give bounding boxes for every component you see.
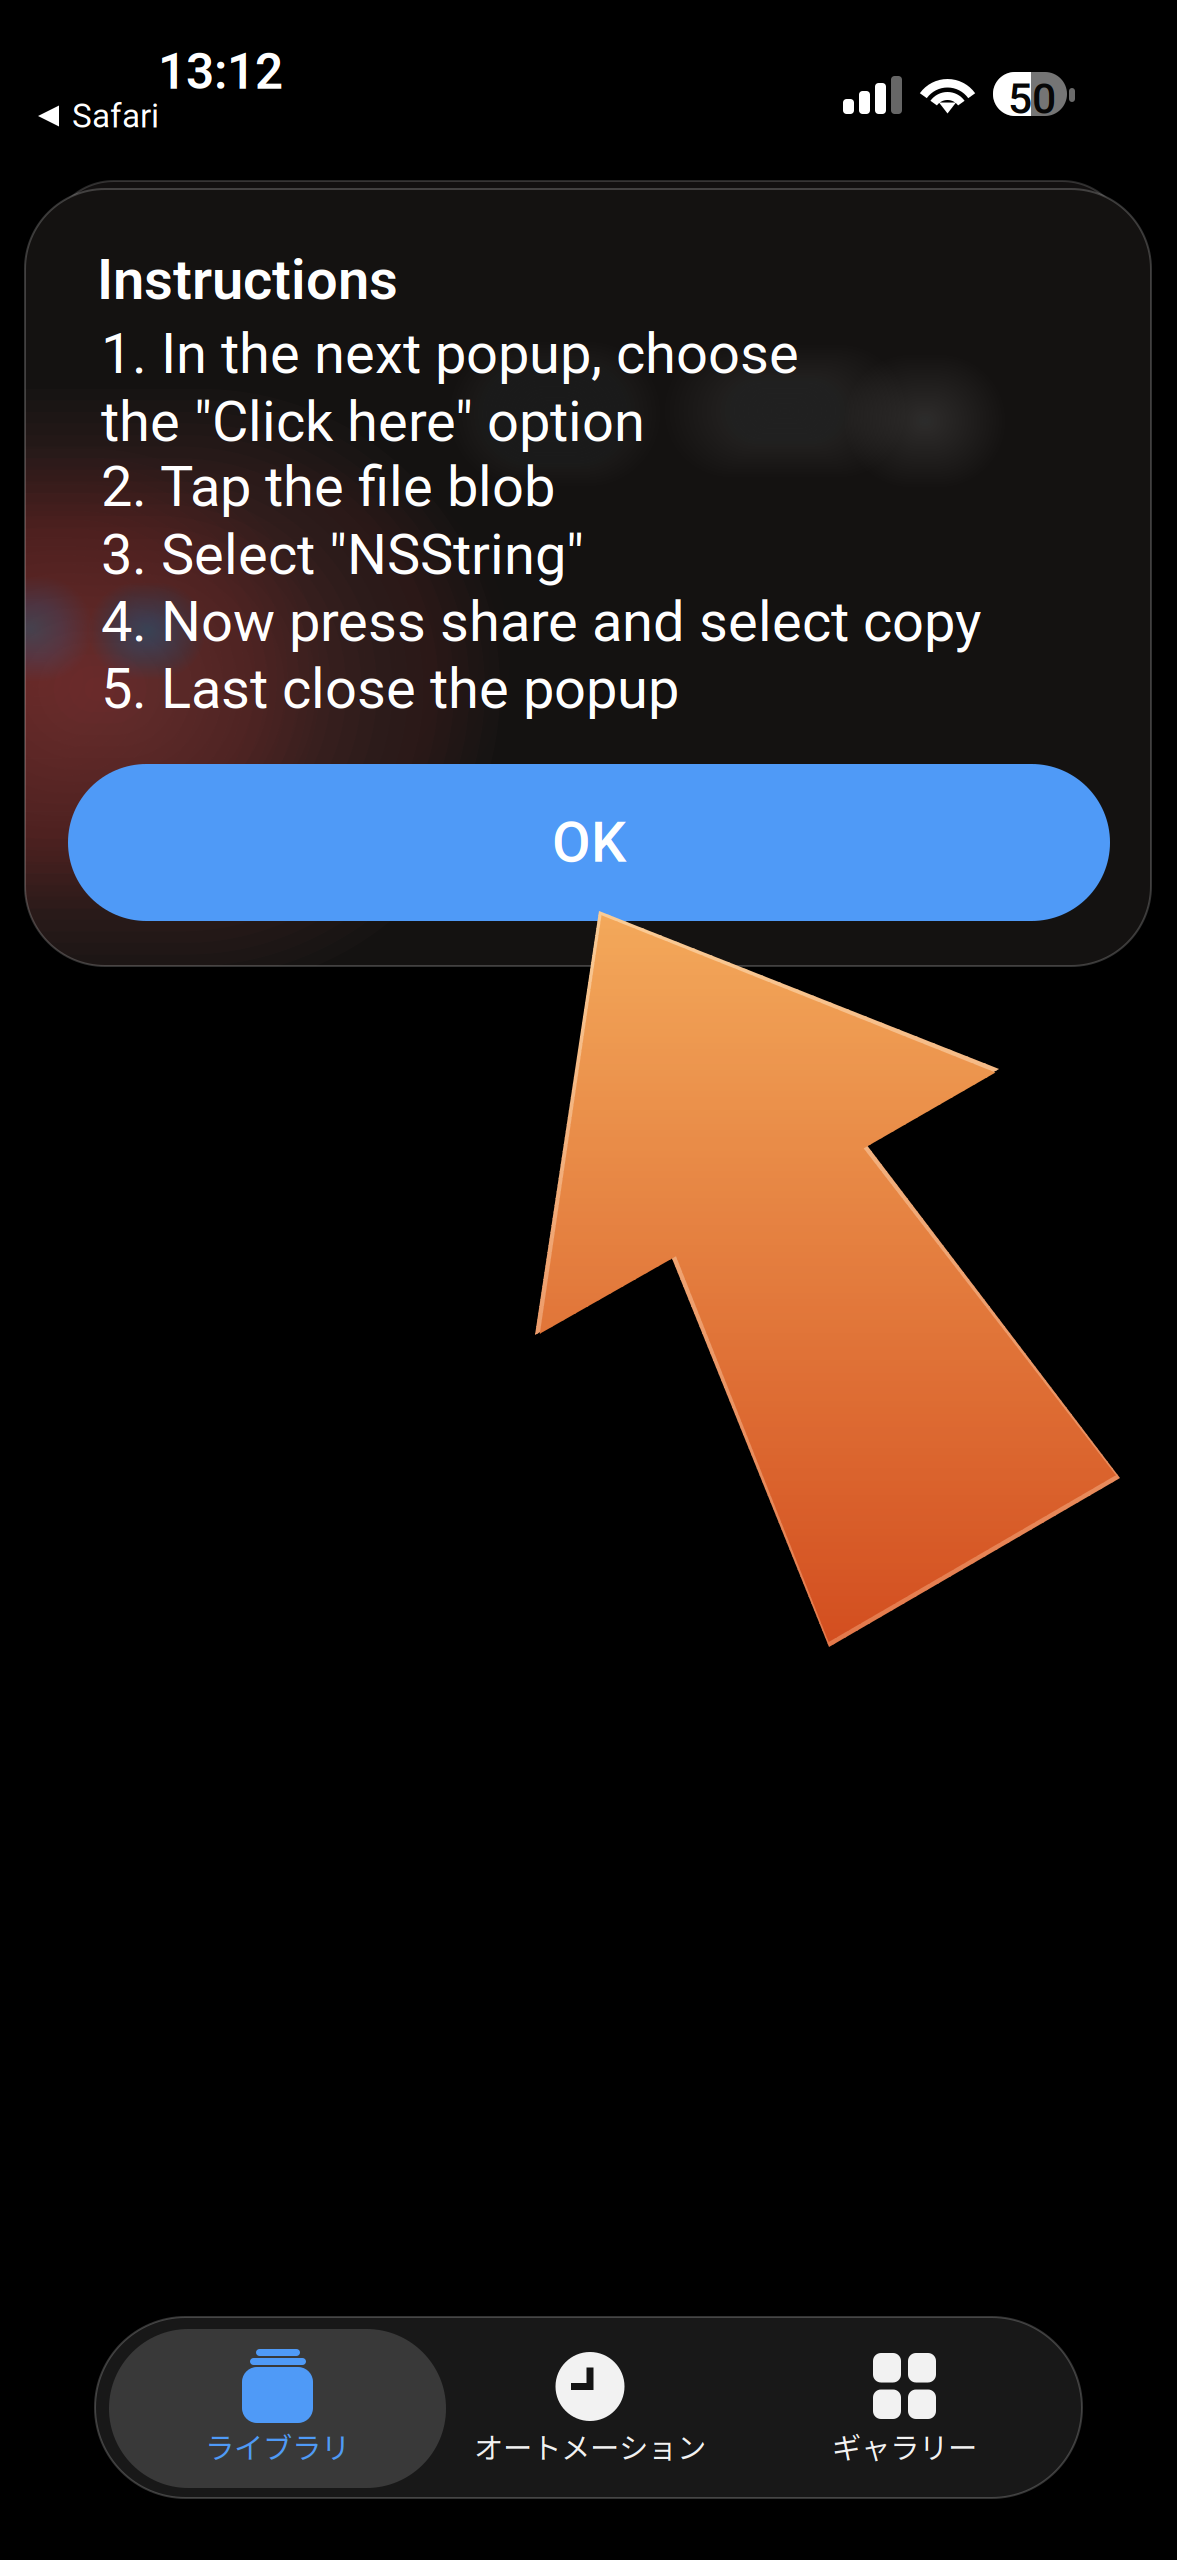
staticText: 4. Now press share and select copy xyxy=(101,589,981,655)
button[interactable]: オートメーション xyxy=(421,2329,758,2488)
button[interactable]: ライブラリ xyxy=(109,2329,446,2488)
staticText: オートメーション xyxy=(474,2425,706,2467)
staticText: OK xyxy=(552,810,626,875)
staticText: 2. Tap the file blob xyxy=(101,454,555,520)
staticText: 3. Select "NSString" xyxy=(101,522,584,588)
button[interactable]: ギャラリー xyxy=(736,2329,1073,2488)
button[interactable]: Safari xyxy=(38,99,159,133)
staticText: the "Click here" option xyxy=(101,389,645,455)
staticText: Safari xyxy=(72,96,159,136)
staticText: 5. Last close the popup xyxy=(101,656,679,722)
staticText: 13:12 xyxy=(158,43,283,101)
button[interactable]: OK xyxy=(68,764,1110,921)
staticText: Instructions xyxy=(97,247,398,313)
staticText: ライブラリ xyxy=(205,2425,350,2467)
staticText: 50 xyxy=(1008,74,1056,124)
staticText: ギャラリー xyxy=(832,2425,977,2467)
staticText: 1. In the next popup, choose xyxy=(101,321,799,387)
